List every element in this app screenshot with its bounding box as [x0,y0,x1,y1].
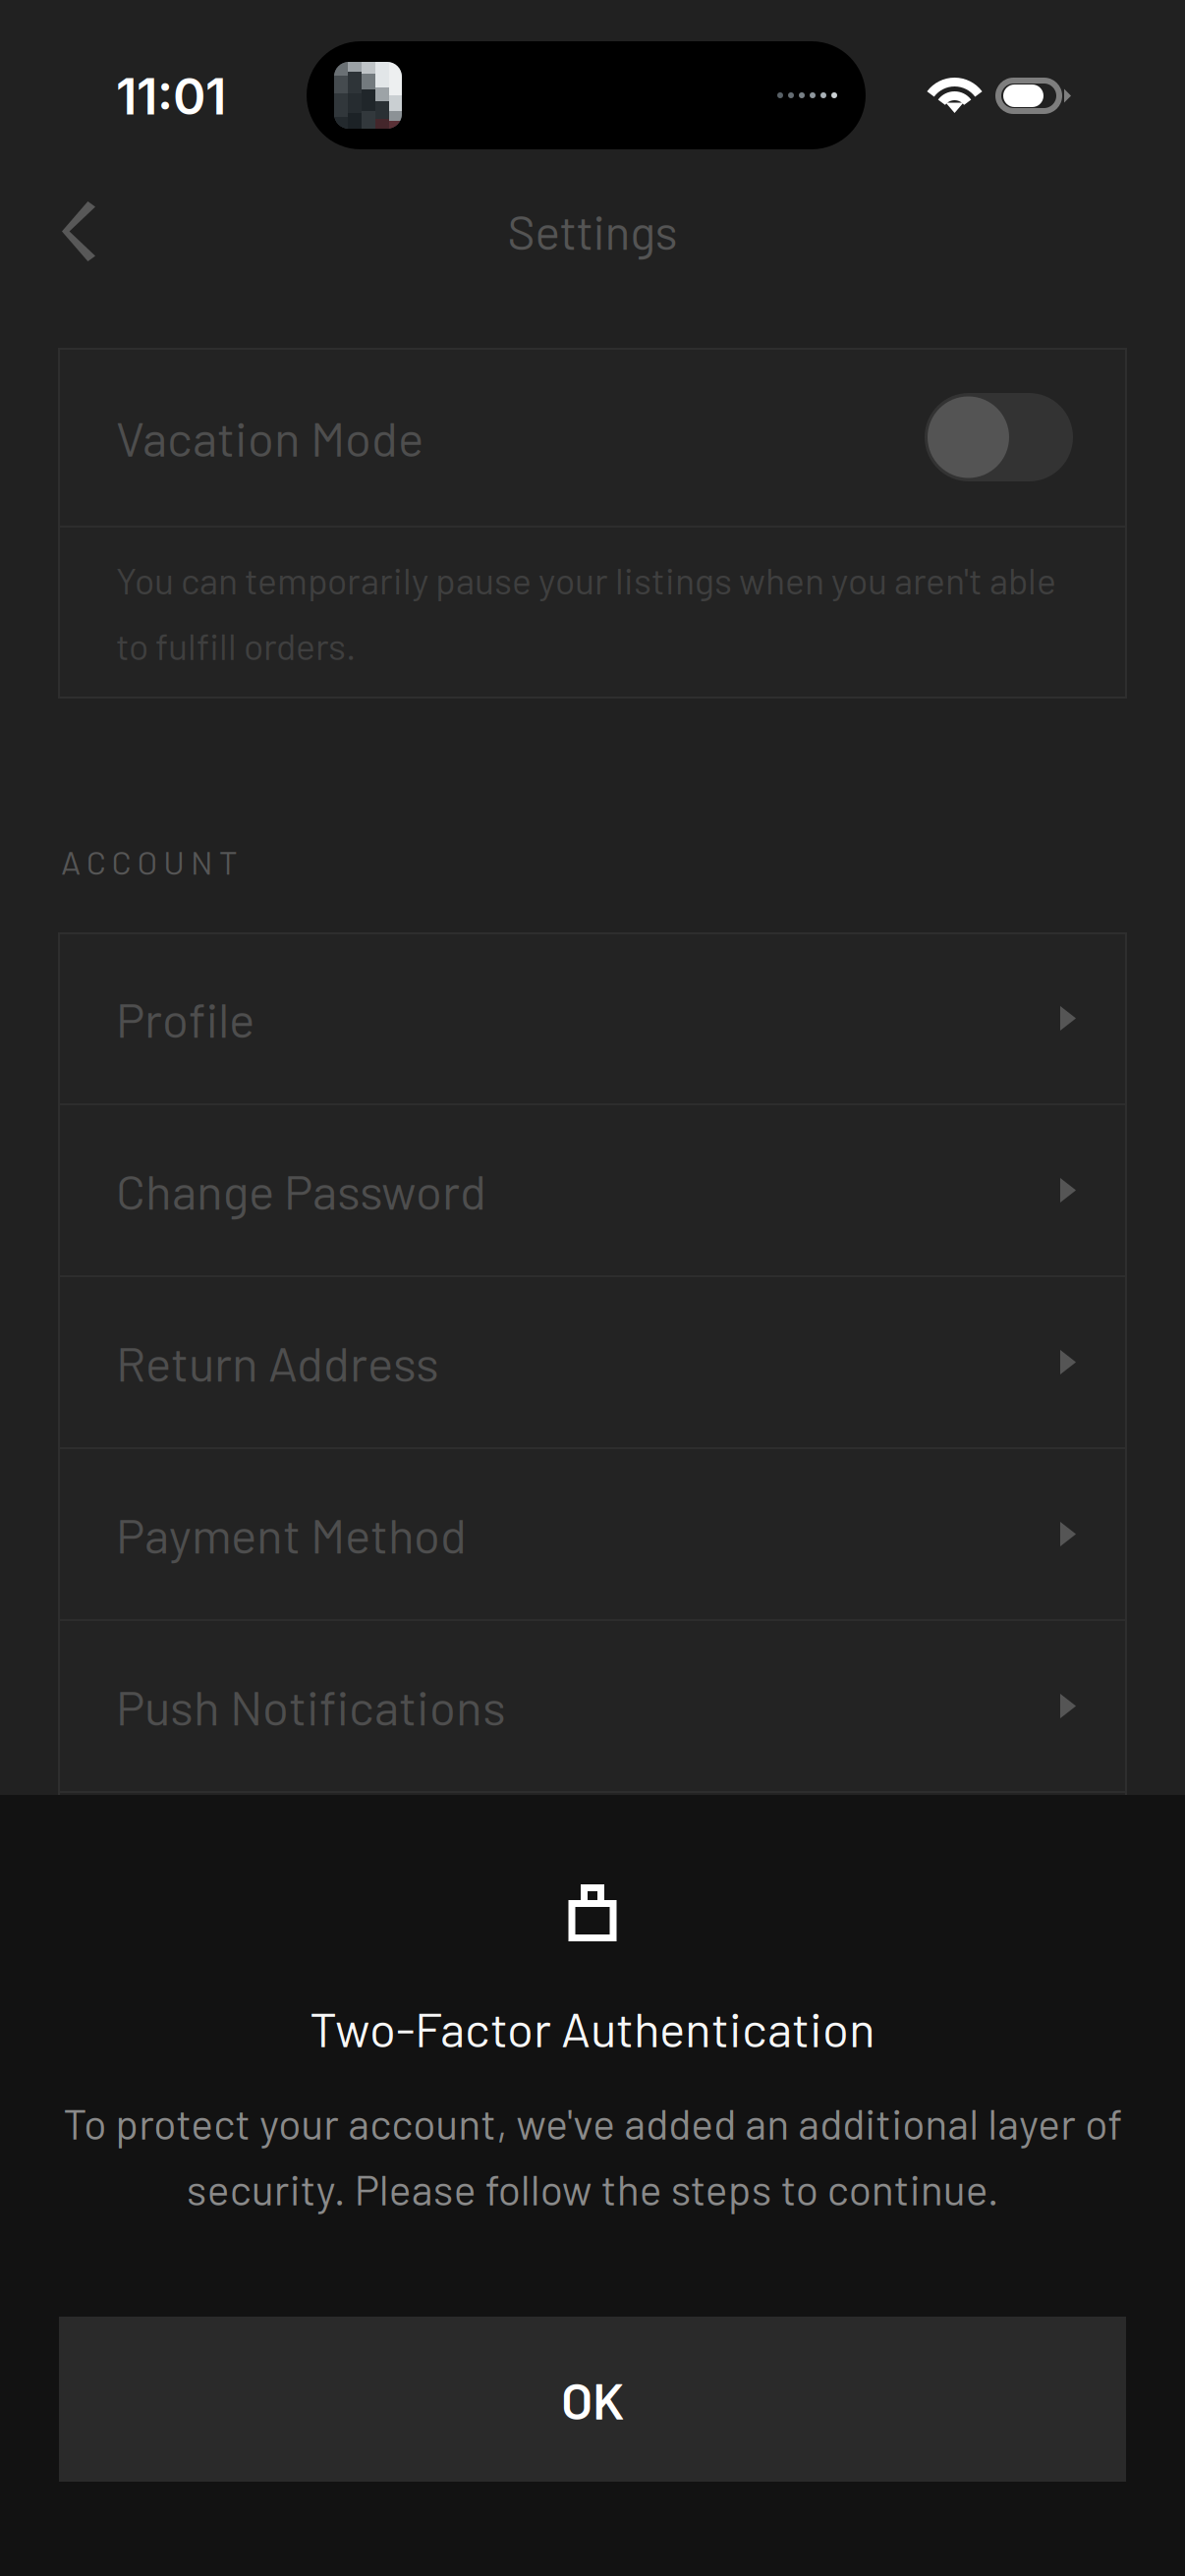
staticText: Change Password [116,1161,486,1219]
button[interactable]: Change Password [59,1105,1126,1275]
staticText: OK [561,2369,624,2430]
staticText: 11:01 [116,66,226,126]
staticText: Payment Method [116,1505,467,1563]
button[interactable]: Profile [59,933,1126,1103]
staticText: ACCOUNT [61,842,238,881]
button[interactable]: Push Notifications [59,1621,1126,1791]
button[interactable]: Back [23,172,141,291]
staticText: Settings [508,203,677,259]
staticText: Vacation Mode [116,408,423,466]
staticText: Two-Factor Authentication [310,1999,875,2057]
staticText: Return Address [116,1333,439,1391]
button[interactable]: Shop Policies [59,1793,1126,1963]
button[interactable]: OK [59,2317,1126,2482]
staticText: To protect your account, we've added an … [63,2098,1122,2214]
button[interactable]: Vacation Mode [925,393,1073,481]
staticText: Profile [116,989,254,1047]
staticText: You can temporarily pause your listings … [116,558,1056,667]
staticText: Push Notifications [116,1677,506,1735]
button[interactable]: Return Address [59,1277,1126,1447]
button[interactable]: Payment Method [59,1449,1126,1619]
